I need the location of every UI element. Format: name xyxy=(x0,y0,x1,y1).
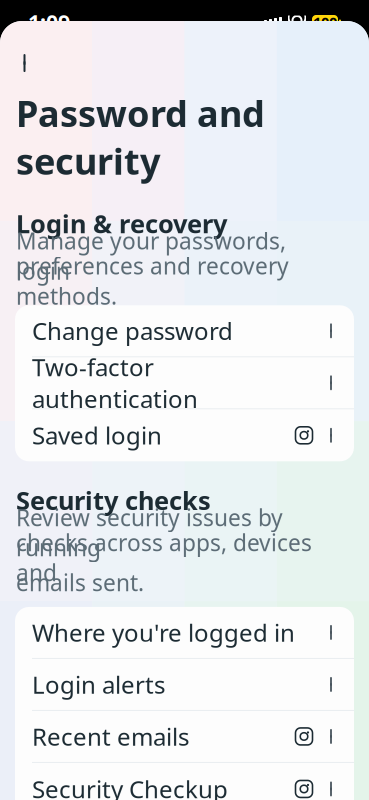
button[interactable]: Login alerts xyxy=(15,659,354,711)
staticText: 100 xyxy=(313,12,337,32)
staticText: checks across apps, devices and xyxy=(16,527,312,587)
staticText: Where you're logged in xyxy=(32,616,295,648)
staticText: Password and security xyxy=(16,89,265,185)
button[interactable]: Change password xyxy=(15,305,354,357)
staticText: Manage your passwords, login xyxy=(16,226,286,286)
staticText: emails sent. xyxy=(16,567,144,597)
staticText: 1:09 xyxy=(28,8,70,36)
staticText: Saved login xyxy=(32,419,162,451)
button[interactable]: Back xyxy=(4,43,48,83)
staticText: preferences and recovery methods. xyxy=(16,251,289,311)
button[interactable]: Security Checkup xyxy=(15,763,354,800)
staticText: Security checks xyxy=(16,483,211,517)
button[interactable]: Recent emails xyxy=(15,711,354,763)
staticText: Security Checkup xyxy=(32,773,228,800)
staticText: Review security issues by running xyxy=(16,502,283,562)
button[interactable]: Saved login xyxy=(15,409,354,461)
button[interactable]: Where you're logged in xyxy=(15,607,354,659)
staticText: Recent emails xyxy=(32,720,189,752)
staticText: Two-factor authentication xyxy=(32,351,198,415)
button[interactable]: Two-factor authentication xyxy=(15,357,354,409)
staticText: Login & recovery xyxy=(16,207,227,240)
staticText: Login alerts xyxy=(32,668,165,700)
staticText: Change password xyxy=(32,315,233,347)
